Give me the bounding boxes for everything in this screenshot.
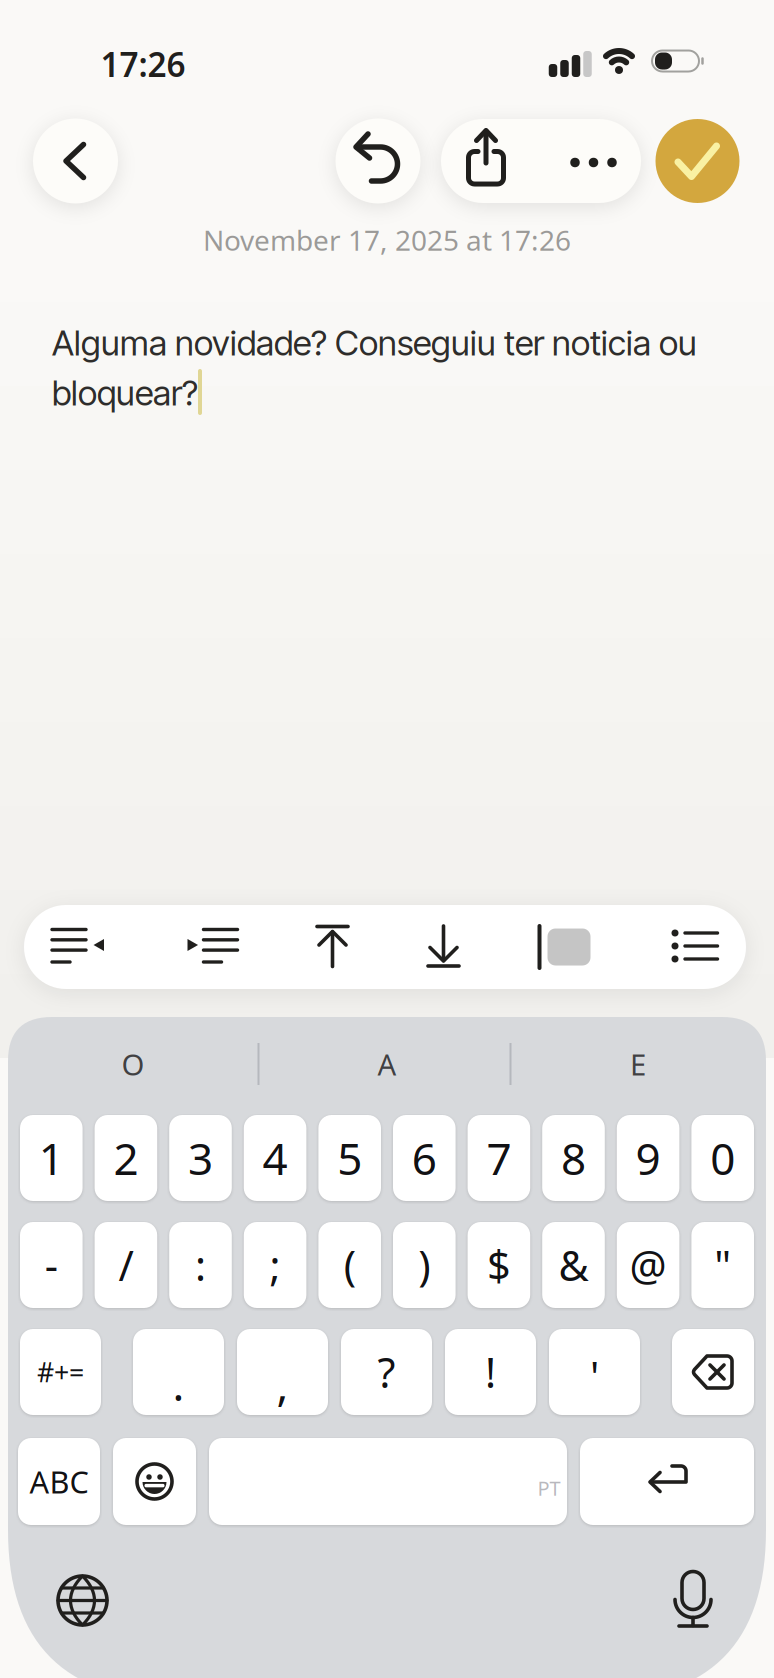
staticText: O bbox=[121, 1044, 144, 1083]
button[interactable]: Decrease indent bbox=[40, 904, 120, 988]
staticText: 8 bbox=[561, 1129, 586, 1187]
staticText: #+= bbox=[37, 1354, 84, 1390]
button[interactable]: Share bbox=[437, 119, 537, 203]
staticText: bloquear? bbox=[52, 372, 198, 414]
button[interactable]: 7 bbox=[468, 1115, 530, 1201]
staticText: 1 bbox=[39, 1129, 64, 1187]
button[interactable]: Delete bbox=[672, 1329, 754, 1415]
button[interactable]: 2 bbox=[95, 1115, 157, 1201]
button[interactable]: ( bbox=[318, 1222, 381, 1308]
button[interactable]: 6 bbox=[393, 1115, 456, 1201]
staticText: @ bbox=[630, 1238, 667, 1292]
button[interactable]: ? bbox=[341, 1329, 432, 1415]
button[interactable]: . bbox=[133, 1329, 224, 1415]
staticText: 3 bbox=[188, 1129, 213, 1187]
staticText: ABC bbox=[29, 1461, 88, 1502]
button[interactable]: 8 bbox=[542, 1115, 605, 1201]
staticText: E bbox=[630, 1044, 646, 1083]
staticText: A bbox=[377, 1044, 396, 1083]
button[interactable]: Next keyboard bbox=[47, 1565, 117, 1635]
staticText: - bbox=[45, 1238, 58, 1292]
staticText: 2 bbox=[113, 1129, 138, 1187]
button[interactable]: : bbox=[169, 1222, 232, 1308]
staticText: 7 bbox=[486, 1129, 511, 1187]
staticText: / bbox=[118, 1238, 133, 1292]
button[interactable]: Move to top bbox=[292, 904, 372, 988]
button[interactable]: 4 bbox=[244, 1115, 306, 1201]
button[interactable]: A bbox=[277, 1035, 497, 1093]
staticText: November 17, 2025 at 17:26 bbox=[203, 221, 571, 259]
button[interactable]: Back bbox=[33, 118, 118, 203]
button[interactable]: & bbox=[542, 1222, 605, 1308]
button[interactable]: / bbox=[95, 1222, 157, 1308]
button[interactable]: #+= bbox=[20, 1329, 101, 1415]
button[interactable]: Move to bottom bbox=[404, 904, 484, 988]
button[interactable]: O bbox=[23, 1035, 243, 1093]
staticText: 0 bbox=[710, 1129, 735, 1187]
button[interactable]: Increase indent bbox=[175, 904, 255, 988]
button[interactable]: ; bbox=[244, 1222, 306, 1308]
staticText: PT bbox=[537, 1475, 560, 1501]
button[interactable]: $ bbox=[468, 1222, 530, 1308]
button[interactable]: Dictation bbox=[663, 1565, 723, 1635]
staticText: ' bbox=[590, 1349, 599, 1403]
button[interactable]: - bbox=[20, 1222, 83, 1308]
staticText: $ bbox=[487, 1238, 511, 1292]
staticText: 5 bbox=[337, 1129, 362, 1187]
staticText: ? bbox=[377, 1345, 395, 1399]
button[interactable]: ) bbox=[393, 1222, 456, 1308]
button[interactable]: More bbox=[539, 119, 639, 203]
button[interactable]: Emoji bbox=[113, 1438, 196, 1525]
staticText: 4 bbox=[263, 1129, 288, 1187]
button[interactable]: 1 bbox=[20, 1115, 83, 1201]
button[interactable]: Return bbox=[580, 1438, 754, 1525]
staticText: , bbox=[276, 1355, 288, 1413]
button[interactable]: List bbox=[658, 904, 738, 988]
button[interactable]: Space bbox=[209, 1438, 567, 1525]
staticText: ! bbox=[485, 1345, 496, 1399]
button[interactable]: ! bbox=[445, 1329, 536, 1415]
button[interactable]: ' bbox=[549, 1329, 640, 1415]
staticText: " bbox=[714, 1238, 731, 1292]
staticText: 6 bbox=[412, 1129, 437, 1187]
button[interactable]: 9 bbox=[617, 1115, 679, 1201]
button[interactable]: 3 bbox=[169, 1115, 232, 1201]
button[interactable]: , bbox=[237, 1329, 328, 1415]
staticText: 17:26 bbox=[100, 42, 185, 86]
staticText: ( bbox=[344, 1238, 356, 1292]
staticText: 9 bbox=[636, 1129, 661, 1187]
button[interactable]: Undo bbox=[335, 118, 420, 203]
button[interactable]: @ bbox=[617, 1222, 679, 1308]
staticText: Alguma novidade? Conseguiu ter noticia o… bbox=[52, 322, 697, 364]
staticText: . bbox=[172, 1355, 184, 1413]
button[interactable]: E bbox=[528, 1035, 748, 1093]
staticText: ) bbox=[418, 1238, 430, 1292]
button[interactable]: ABC bbox=[18, 1438, 100, 1525]
staticText: ; bbox=[270, 1238, 281, 1292]
button[interactable]: Done bbox=[655, 119, 739, 203]
staticText: & bbox=[558, 1238, 588, 1292]
button[interactable]: 5 bbox=[318, 1115, 381, 1201]
button[interactable]: 0 bbox=[691, 1115, 754, 1201]
button[interactable]: Insert block bbox=[526, 904, 606, 988]
button[interactable]: " bbox=[691, 1222, 754, 1308]
staticText: : bbox=[195, 1238, 206, 1292]
